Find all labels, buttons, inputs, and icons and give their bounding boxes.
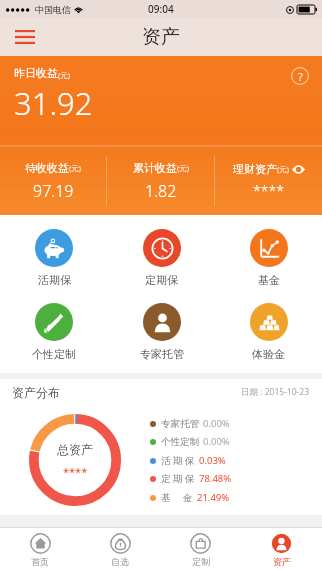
staticText: 昨日收益 xyxy=(14,66,58,80)
staticText: 个性定制 xyxy=(32,347,76,361)
staticText: ? xyxy=(298,69,303,84)
staticText: 1.82 xyxy=(145,180,177,202)
staticText: 首页 xyxy=(31,556,49,567)
button[interactable]: 定制 xyxy=(160,528,241,572)
staticText: (元) xyxy=(277,164,289,174)
staticText: 0.00% xyxy=(203,435,230,448)
button[interactable]: 个性定制 xyxy=(0,299,108,365)
button[interactable]: 资产 xyxy=(241,528,322,572)
staticText: 21.49% xyxy=(197,491,230,504)
button[interactable]: 理财资产 xyxy=(215,147,322,215)
button[interactable]: 定期保 xyxy=(108,225,215,291)
staticText: 活期保 xyxy=(38,273,71,287)
staticText: 基金 xyxy=(258,273,280,287)
button[interactable]: 累计收益 xyxy=(107,147,214,215)
staticText: 活 期 保 xyxy=(161,454,195,467)
staticText: 97.19 xyxy=(33,180,74,202)
staticText: 78.48% xyxy=(199,472,232,485)
button[interactable]: Help xyxy=(288,64,312,88)
button[interactable]: 基金 xyxy=(215,225,322,291)
staticText: 0.00% xyxy=(203,417,230,430)
staticText: 个性定制 xyxy=(161,436,199,448)
staticText: 累计收益 xyxy=(133,161,177,175)
staticText: **** xyxy=(63,464,88,479)
staticText: 理财资产 xyxy=(233,162,277,176)
button[interactable]: 专家托管 xyxy=(108,299,215,365)
staticText: (元) xyxy=(58,70,70,80)
staticText: 专家托管 xyxy=(161,418,199,430)
staticText: 中国电信 xyxy=(35,4,71,15)
staticText: 待收收益 xyxy=(25,161,69,175)
staticText: 31.92 xyxy=(14,82,93,124)
button[interactable]: 活期保 xyxy=(0,225,108,291)
staticText: 日期 : 2015-10-23 xyxy=(241,386,310,398)
button[interactable]: 体验金 xyxy=(215,299,322,365)
button[interactable]: 待收收益 xyxy=(0,147,106,215)
staticText: 基 金 xyxy=(161,491,193,504)
staticText: 自选 xyxy=(111,556,129,567)
staticText: 定制 xyxy=(192,556,210,567)
staticText: 09:04 xyxy=(148,2,174,16)
staticText: **** xyxy=(253,181,284,200)
staticText: 总资产 xyxy=(57,442,93,457)
staticText: 资产 xyxy=(273,556,291,567)
staticText: 定 期 保 xyxy=(161,472,195,485)
staticText: 资产分布 xyxy=(12,385,60,400)
staticText: 0.03% xyxy=(199,454,226,467)
staticText: (元) xyxy=(177,163,189,173)
staticText: 定期保 xyxy=(145,273,178,287)
staticText: (元) xyxy=(69,163,81,173)
staticText: 专家托管 xyxy=(140,347,184,361)
staticText: 体验金 xyxy=(252,347,285,361)
staticText: 资产 xyxy=(142,25,180,49)
button[interactable]: 自选 xyxy=(80,528,160,572)
button[interactable]: Menu xyxy=(8,20,42,54)
button[interactable]: 首页 xyxy=(0,528,80,572)
